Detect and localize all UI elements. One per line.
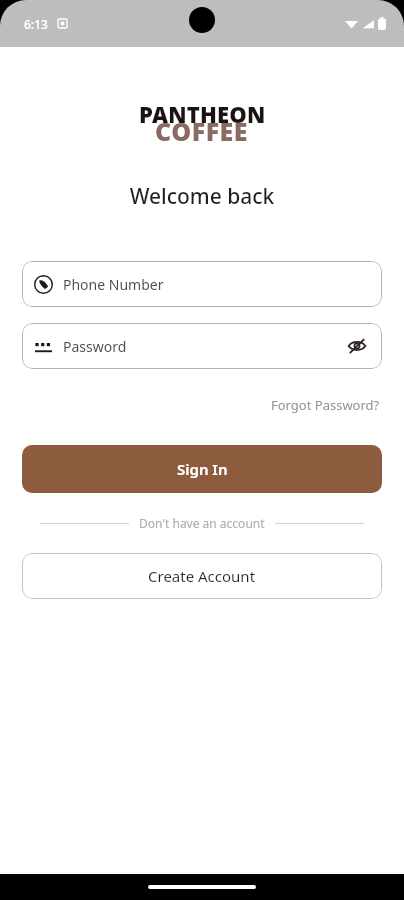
staticText: 6:13 bbox=[24, 16, 48, 32]
staticText: Phone Number bbox=[63, 275, 164, 294]
button[interactable]: Forgot Password? bbox=[269, 393, 382, 417]
staticText: Sign In bbox=[177, 459, 228, 479]
button[interactable]: Sign In bbox=[22, 445, 382, 493]
staticText: PANTHEON bbox=[139, 99, 266, 129]
staticText: COFFEE bbox=[155, 114, 249, 148]
button[interactable]: Show password bbox=[344, 333, 370, 359]
staticText: Don't have an account bbox=[139, 515, 265, 531]
staticText: Create Account bbox=[148, 566, 256, 586]
staticText: Welcome back bbox=[0, 182, 404, 211]
button[interactable]: Create Account bbox=[22, 553, 382, 599]
button[interactable]: Password bbox=[22, 323, 382, 369]
staticText: Forgot Password? bbox=[271, 396, 380, 414]
button[interactable]: Phone Number bbox=[22, 261, 382, 307]
staticText: Password bbox=[63, 337, 127, 356]
